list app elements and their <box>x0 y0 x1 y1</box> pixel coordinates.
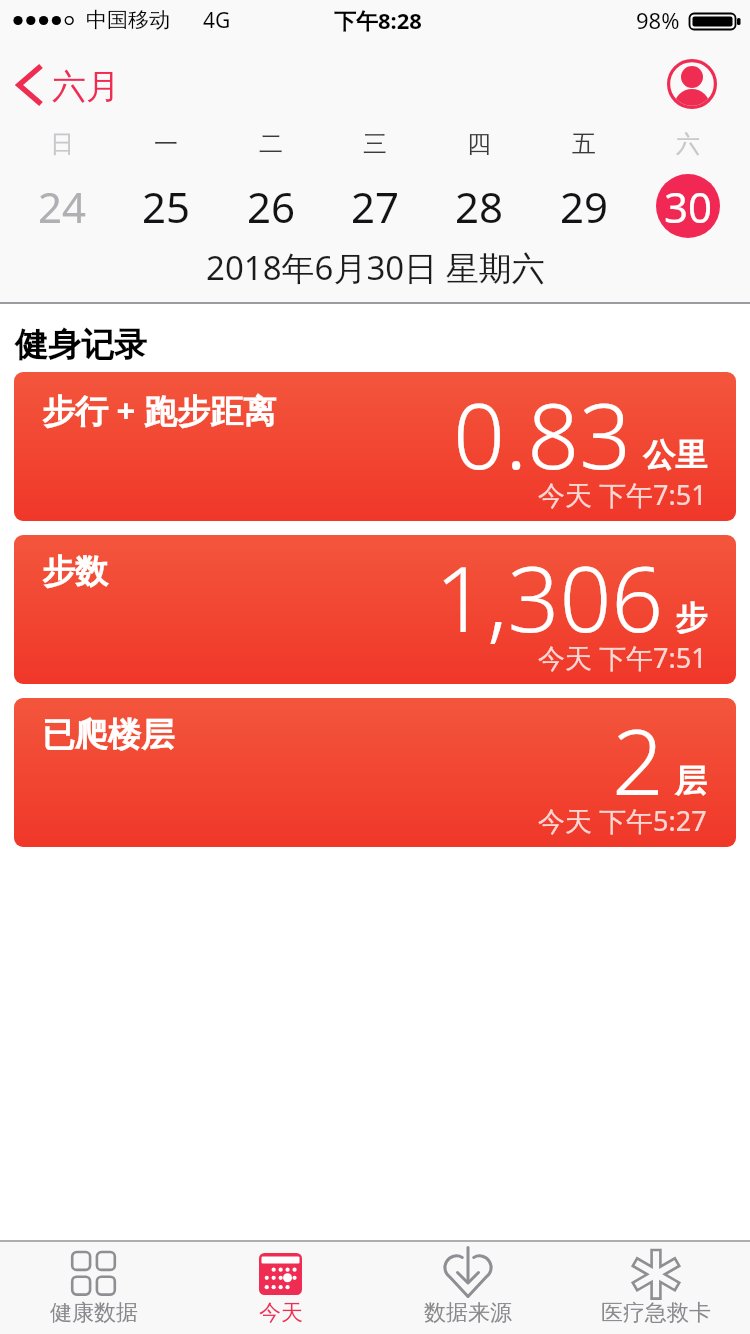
staticText: 已爬楼层 <box>42 714 174 756</box>
staticText: 医疗急救卡 <box>601 1299 711 1327</box>
staticText: 28 <box>455 178 504 235</box>
staticText: 30 <box>664 178 713 235</box>
button[interactable]: 健康数据 <box>0 1242 187 1334</box>
staticText: 98% <box>636 5 680 35</box>
button[interactable]: 六月 <box>8 58 138 114</box>
staticText: 今天 下午7:51 <box>538 476 707 513</box>
button[interactable]: 步数 <box>14 535 736 684</box>
staticText: 六 <box>676 129 700 159</box>
staticText: 中国移动 <box>86 7 170 33</box>
staticText: 25 <box>142 178 191 235</box>
staticText: 三 <box>363 129 387 159</box>
staticText: 一 <box>154 129 178 159</box>
staticText: 26 <box>247 178 296 235</box>
staticText: 步行 + 跑步距离 <box>42 388 277 433</box>
staticText: 2018年6月30日 星期六 <box>206 245 545 290</box>
staticText: 下午8:28 <box>334 5 422 35</box>
staticText: 今天 <box>259 1299 303 1327</box>
button[interactable] <box>667 59 717 109</box>
staticText: 日 <box>50 129 74 159</box>
staticText: 五 <box>572 129 596 159</box>
staticText: 公里 <box>643 435 707 475</box>
button[interactable]: 医疗急救卡 <box>562 1242 750 1334</box>
staticText: 层 <box>675 761 707 801</box>
staticText: 六月 <box>52 65 120 108</box>
staticText: 29 <box>560 178 609 235</box>
button[interactable]: 今天 <box>187 1242 374 1334</box>
staticText: 1,306 <box>435 535 664 659</box>
staticText: 今天 下午5:27 <box>538 802 707 839</box>
staticText: 四 <box>467 129 491 159</box>
staticText: 健身记录 <box>15 324 147 366</box>
button[interactable]: 数据来源 <box>374 1242 562 1334</box>
button[interactable]: 已爬楼层 <box>14 698 736 847</box>
staticText: 24 <box>38 178 87 235</box>
staticText: 步 <box>675 598 707 638</box>
button[interactable]: 步行 + 跑步距离 <box>14 372 736 521</box>
staticText: 健康数据 <box>50 1299 138 1327</box>
staticText: 步数 <box>42 551 108 593</box>
staticText: 数据来源 <box>424 1299 512 1327</box>
staticText: 27 <box>351 178 400 235</box>
staticText: 4G <box>203 6 231 35</box>
staticText: 今天 下午7:51 <box>538 639 707 676</box>
staticText: 2 <box>612 698 664 822</box>
staticText: 二 <box>259 129 283 159</box>
staticText: 0.83 <box>453 372 632 496</box>
